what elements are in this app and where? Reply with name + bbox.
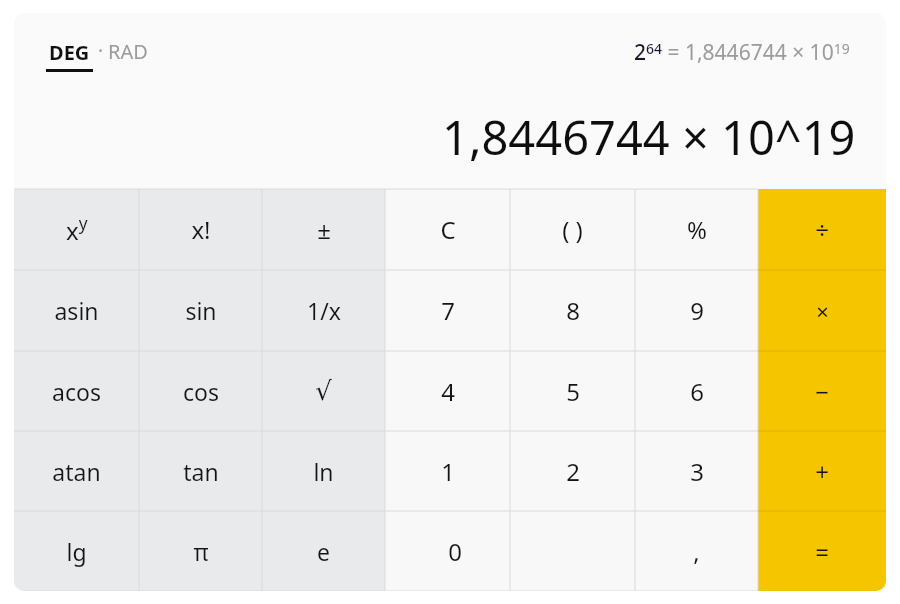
staticText: 3	[690, 455, 704, 488]
staticText: 2	[566, 455, 580, 488]
button[interactable]: DEG	[46, 39, 93, 69]
staticText: 264 = 1,8446744 × 1019	[634, 38, 850, 67]
staticText: atan	[52, 456, 101, 487]
button[interactable]: x!	[139, 189, 262, 270]
staticText: √	[315, 376, 332, 406]
staticText: %	[687, 213, 707, 246]
staticText: 1/x	[307, 295, 341, 326]
button[interactable]: lg	[14, 511, 139, 591]
staticText: ln	[313, 456, 334, 487]
staticText: C	[440, 213, 456, 246]
staticText: −	[815, 375, 829, 408]
button[interactable]: 2	[510, 431, 635, 511]
button[interactable]: cos	[139, 351, 262, 431]
staticText: ·	[93, 38, 108, 64]
button[interactable]: 1/x	[262, 270, 385, 351]
button[interactable]: RAD	[108, 38, 148, 65]
button[interactable]: 6	[635, 351, 758, 431]
button[interactable]: tan	[139, 431, 262, 511]
staticText: lg	[66, 536, 87, 567]
button[interactable]: Subtract	[758, 351, 886, 431]
button[interactable]: asin	[14, 270, 139, 351]
staticText: sin	[185, 295, 217, 326]
button[interactable]: π	[139, 511, 262, 591]
staticText: 6	[690, 375, 704, 408]
button[interactable]: √	[262, 351, 385, 431]
button[interactable]: C	[385, 189, 510, 270]
button[interactable]: Add	[758, 431, 886, 511]
staticText: DEG	[49, 39, 90, 66]
staticText: xy	[66, 212, 88, 247]
button[interactable]: 8	[510, 270, 635, 351]
staticText: 7	[441, 294, 455, 327]
staticText: +	[815, 455, 829, 488]
staticText: acos	[52, 376, 101, 407]
staticText: 5	[566, 375, 580, 408]
button[interactable]: ±	[262, 189, 385, 270]
button[interactable]: ln	[262, 431, 385, 511]
button[interactable]: Equals	[758, 511, 886, 591]
button[interactable]: e	[262, 511, 385, 591]
staticText: 8	[566, 294, 580, 327]
button[interactable]: xy	[14, 189, 139, 270]
button[interactable]: Divide	[758, 189, 886, 270]
staticText: 1	[441, 455, 455, 488]
button[interactable]: %	[635, 189, 758, 270]
staticText: e	[317, 536, 330, 567]
button[interactable]: sin	[139, 270, 262, 351]
staticText: 9	[690, 294, 704, 327]
staticText: 1,8446744 × 10^19	[442, 105, 856, 169]
button[interactable]: 9	[635, 270, 758, 351]
button[interactable]: ( )	[510, 189, 635, 270]
staticText: asin	[54, 295, 99, 326]
button[interactable]: acos	[14, 351, 139, 431]
button[interactable]: Multiply	[758, 270, 886, 351]
staticText: cos	[183, 376, 219, 407]
staticText: π	[193, 536, 209, 567]
button[interactable]: 5	[510, 351, 635, 431]
staticText: 0	[448, 535, 462, 568]
staticText: ×	[816, 296, 829, 326]
staticText: =	[815, 535, 829, 568]
staticText: tan	[183, 456, 219, 487]
button[interactable]: 7	[385, 270, 510, 351]
button[interactable]: atan	[14, 431, 139, 511]
button[interactable]: ,	[635, 511, 758, 591]
staticText: ,	[693, 535, 700, 568]
staticText: x!	[191, 213, 211, 246]
button[interactable]: 1	[385, 431, 510, 511]
button[interactable]: 0	[385, 511, 635, 591]
staticText: ( )	[562, 213, 583, 246]
staticText: ÷	[815, 213, 829, 246]
button[interactable]: 3	[635, 431, 758, 511]
staticText: 4	[441, 375, 455, 408]
staticText: ±	[317, 213, 331, 246]
button[interactable]: 4	[385, 351, 510, 431]
